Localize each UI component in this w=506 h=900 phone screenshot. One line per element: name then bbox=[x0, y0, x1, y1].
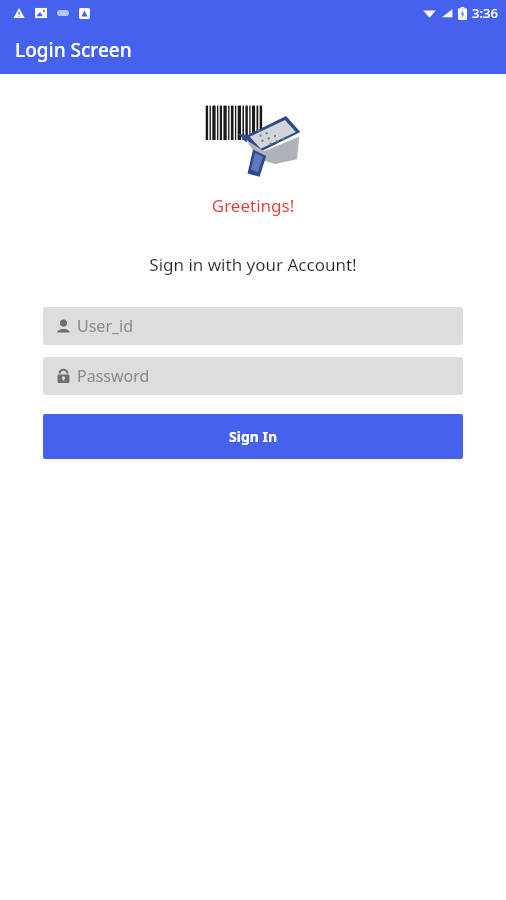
other: Barcode scanner logo bbox=[198, 100, 308, 180]
staticText: Sign In bbox=[229, 427, 278, 446]
staticText: Login Screen bbox=[15, 37, 132, 63]
staticText: User_id bbox=[77, 315, 134, 337]
button[interactable]: User_id bbox=[43, 307, 463, 345]
staticText: Greetings! bbox=[0, 194, 506, 217]
button[interactable]: Password bbox=[43, 357, 463, 395]
button[interactable]: Sign In bbox=[43, 414, 463, 459]
staticText: Password bbox=[77, 365, 150, 387]
staticText: 3:36 bbox=[472, 4, 498, 22]
staticText: Sign in with your Account! bbox=[0, 253, 506, 276]
